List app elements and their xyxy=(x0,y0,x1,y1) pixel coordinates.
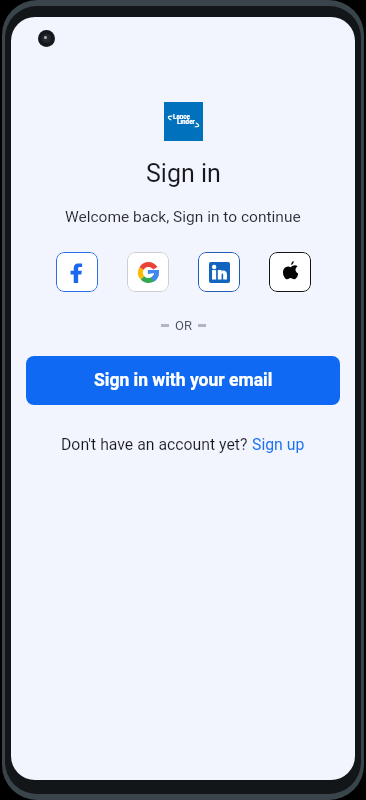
button[interactable]: Sign in with Google xyxy=(127,252,169,292)
button[interactable]: Sign up xyxy=(252,435,305,454)
staticText: OR xyxy=(175,318,192,333)
staticText: Lance xyxy=(173,113,191,120)
staticText: Linder xyxy=(177,118,195,125)
staticText: Sign in xyxy=(146,159,221,188)
button[interactable]: Sign in with LinkedIn xyxy=(198,252,240,292)
staticText: Sign up xyxy=(252,435,305,454)
staticText: Sign in with your email xyxy=(94,370,273,391)
staticText: Welcome back, Sign in to continue xyxy=(65,208,301,226)
button[interactable]: Sign in with Facebook xyxy=(56,252,98,292)
staticText: Don't have an account yet? xyxy=(61,435,252,454)
button[interactable]: Sign in with Apple xyxy=(269,252,311,292)
button[interactable]: Sign in with your email xyxy=(26,356,340,405)
